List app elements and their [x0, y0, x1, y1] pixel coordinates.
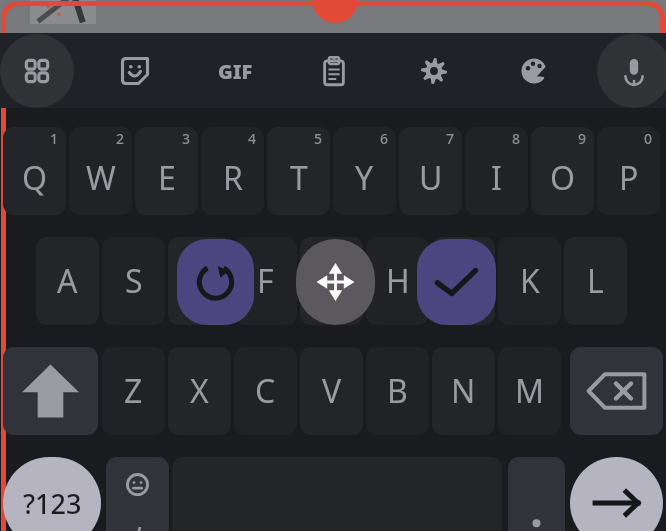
- button[interactable]: Shift: [3, 347, 98, 435]
- button[interactable]: 4: [201, 127, 264, 215]
- staticText: Z: [124, 369, 143, 413]
- staticText: O: [550, 156, 575, 200]
- staticText: 8: [512, 129, 521, 148]
- button[interactable]: F: [234, 237, 297, 325]
- staticText: N: [451, 369, 476, 413]
- button[interactable]: 8: [465, 127, 528, 215]
- button[interactable]: Z: [102, 347, 165, 435]
- button[interactable]: Emoji and comma: [106, 457, 169, 531]
- button[interactable]: Key: [432, 237, 495, 325]
- staticText: GIF: [218, 58, 253, 85]
- staticText: T: [290, 156, 308, 200]
- button[interactable]: 0: [597, 127, 660, 215]
- staticText: V: [322, 369, 342, 413]
- button[interactable]: 1: [3, 127, 66, 215]
- button[interactable]: Backspace: [570, 347, 663, 435]
- staticText: R: [223, 156, 243, 200]
- button[interactable]: ?123: [3, 457, 101, 531]
- staticText: 9: [578, 129, 587, 148]
- button[interactable]: X: [168, 347, 231, 435]
- button[interactable]: A: [36, 237, 99, 325]
- button[interactable]: Confirm: [417, 239, 496, 325]
- button[interactable]: GIF: [209, 45, 261, 97]
- button[interactable]: H: [366, 237, 429, 325]
- button[interactable]: N: [432, 347, 495, 435]
- staticText: 5: [314, 129, 323, 148]
- button[interactable]: L: [564, 237, 627, 325]
- button[interactable]: Open apps: [11, 45, 63, 97]
- button[interactable]: S: [102, 237, 165, 325]
- button[interactable]: Reset: [177, 239, 254, 325]
- button[interactable]: 6: [333, 127, 396, 215]
- button[interactable]: Enter: [570, 457, 663, 531]
- staticText: 1: [50, 129, 59, 148]
- staticText: P: [619, 156, 639, 200]
- staticText: 0: [644, 129, 653, 148]
- button[interactable]: Clipboard: [308, 45, 360, 97]
- button[interactable]: C: [234, 347, 297, 435]
- staticText: H: [386, 259, 410, 303]
- button[interactable]: Themes: [508, 45, 560, 97]
- button[interactable]: 5: [267, 127, 330, 215]
- button[interactable]: V: [300, 347, 363, 435]
- button[interactable]: Voice input: [608, 45, 660, 97]
- staticText: L: [587, 259, 604, 303]
- staticText: 6: [380, 129, 389, 148]
- staticText: X: [190, 369, 209, 413]
- button[interactable]: Stickers: [109, 45, 161, 97]
- staticText: ?123: [23, 485, 82, 522]
- button[interactable]: K: [498, 237, 561, 325]
- staticText: M: [515, 369, 545, 413]
- button[interactable]: Period: [508, 457, 565, 531]
- staticText: E: [158, 156, 176, 200]
- staticText: F: [257, 259, 274, 303]
- button[interactable]: M: [498, 347, 561, 435]
- button[interactable]: Move: [296, 239, 375, 325]
- button[interactable]: 3: [135, 127, 198, 215]
- button[interactable]: B: [366, 347, 429, 435]
- staticText: A: [57, 259, 78, 303]
- button[interactable]: Key: [300, 237, 363, 325]
- staticText: C: [255, 369, 276, 413]
- button[interactable]: 2: [69, 127, 132, 215]
- button[interactable]: Key: [168, 237, 231, 325]
- staticText: Q: [22, 156, 47, 200]
- staticText: B: [387, 369, 408, 413]
- staticText: W: [86, 156, 116, 200]
- staticText: 3: [182, 129, 191, 148]
- staticText: 7: [446, 129, 455, 148]
- staticText: U: [419, 156, 443, 200]
- button[interactable]: 9: [531, 127, 594, 215]
- button[interactable]: Settings: [408, 45, 460, 97]
- staticText: Y: [355, 156, 374, 200]
- staticText: 2: [116, 129, 125, 148]
- staticText: I: [491, 156, 502, 200]
- staticText: 4: [248, 129, 257, 148]
- button[interactable]: 7: [399, 127, 462, 215]
- staticText: K: [520, 259, 540, 303]
- staticText: S: [125, 259, 143, 303]
